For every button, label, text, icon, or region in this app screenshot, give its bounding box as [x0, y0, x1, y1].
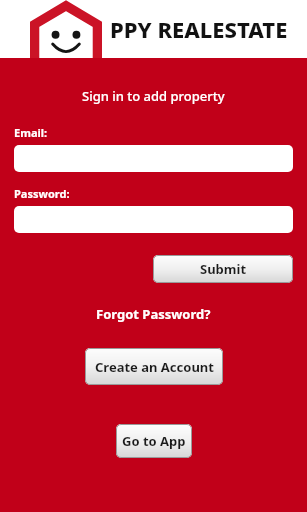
other: Happy Realestate logo: [30, 0, 102, 58]
staticText: Forgot Password?: [96, 305, 211, 323]
button[interactable]: [14, 145, 293, 172]
staticText: Sign in to add property: [82, 87, 225, 105]
staticText: Create an Account: [95, 358, 214, 376]
button[interactable]: [14, 206, 293, 233]
staticText: PPY REALESTATE: [110, 14, 288, 44]
button[interactable]: Create an Account: [85, 348, 223, 385]
button[interactable]: Go to App: [116, 424, 192, 458]
staticText: Password:: [14, 186, 70, 201]
button[interactable]: Submit: [153, 255, 293, 283]
staticText: Email:: [14, 125, 48, 140]
staticText: Submit: [200, 260, 247, 278]
staticText: Go to App: [122, 432, 186, 450]
button[interactable]: Forgot Password?: [92, 301, 215, 327]
